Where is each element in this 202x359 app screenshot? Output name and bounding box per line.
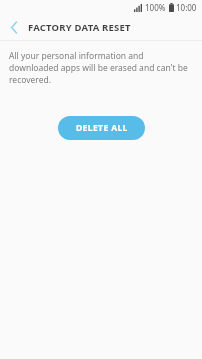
button[interactable]: Back — [0, 15, 28, 40]
staticText: 10:00 — [176, 2, 197, 13]
staticText: DELETE ALL — [76, 122, 128, 134]
staticText: All your personal information and downlo… — [9, 50, 190, 86]
button[interactable]: DELETE ALL — [58, 116, 145, 140]
staticText: 100% — [145, 2, 166, 13]
staticText: FACTORY DATA RESET — [28, 21, 131, 34]
